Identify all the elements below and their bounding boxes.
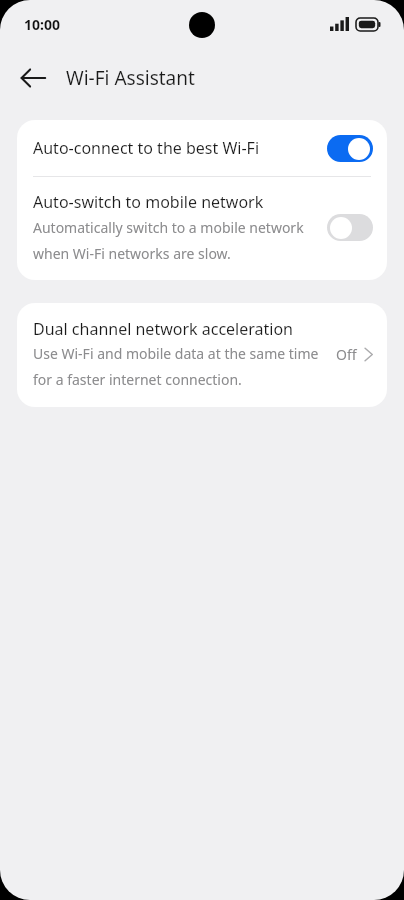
staticText: Wi-Fi Assistant: [66, 65, 195, 91]
button[interactable]: Off: [327, 214, 373, 241]
staticText: Use Wi-Fi and mobile data at the same ti…: [33, 344, 324, 390]
staticText: Automatically switch to a mobile network…: [33, 218, 317, 264]
button[interactable]: Auto-connect to the best Wi-Fi: [17, 120, 387, 176]
button[interactable]: On: [327, 135, 373, 162]
staticText: Auto-connect to the best Wi-Fi: [33, 137, 327, 159]
staticText: 10:00: [24, 15, 60, 34]
staticText: Auto-switch to mobile network: [33, 191, 264, 213]
staticText: Off: [336, 345, 357, 364]
button[interactable]: Back: [10, 55, 56, 101]
button[interactable]: Auto-switch to mobile network: [17, 177, 387, 280]
staticText: Dual channel network acceleration: [33, 318, 293, 340]
button[interactable]: Dual channel network acceleration: [17, 303, 387, 407]
